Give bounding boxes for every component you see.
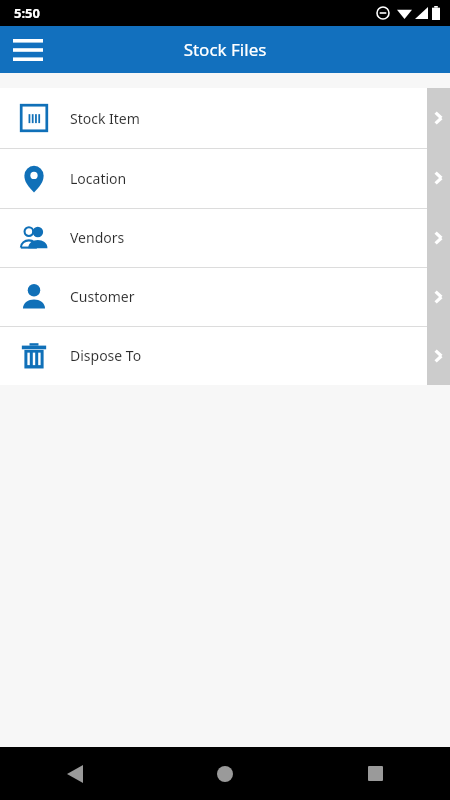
button[interactable]: Back (0, 747, 150, 800)
staticText: Stock Item (70, 109, 140, 128)
staticText: 5:50 (14, 4, 40, 22)
button[interactable]: Recent apps (300, 747, 450, 800)
button[interactable]: Open navigation menu (8, 30, 48, 70)
button[interactable]: Location (0, 148, 450, 208)
staticText: Stock Files (0, 38, 450, 61)
button[interactable]: Home (150, 747, 300, 800)
button[interactable]: Stock Item (0, 88, 450, 148)
staticText: Vendors (70, 228, 125, 247)
staticText: Location (70, 169, 127, 188)
button[interactable]: Vendors (0, 208, 450, 267)
staticText: Customer (70, 287, 135, 306)
staticText: Dispose To (70, 346, 142, 365)
button[interactable]: Dispose To (0, 326, 450, 385)
button[interactable]: Customer (0, 267, 450, 326)
